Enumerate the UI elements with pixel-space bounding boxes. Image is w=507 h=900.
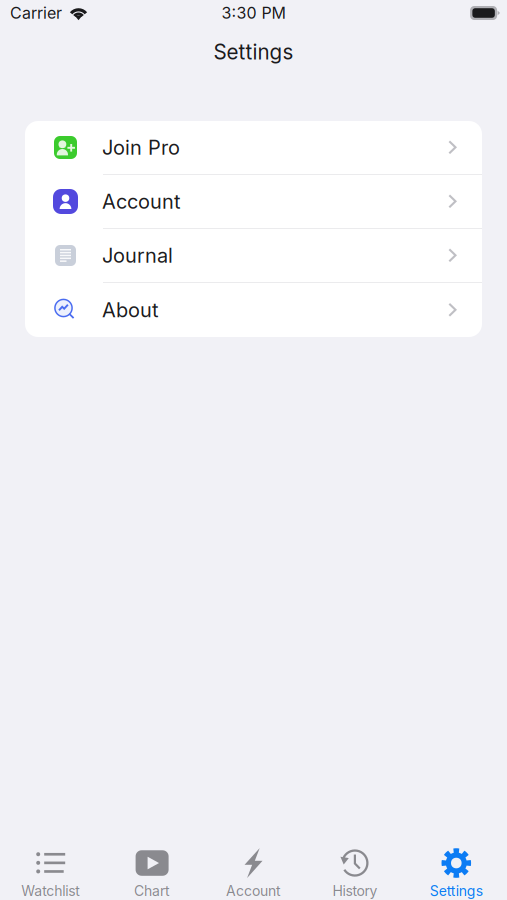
button[interactable]: Journal xyxy=(25,229,482,283)
staticText: Chart xyxy=(134,882,170,899)
staticText: Carrier xyxy=(10,3,62,23)
staticText: Journal xyxy=(102,243,173,268)
button[interactable]: About xyxy=(25,283,482,337)
staticText: Settings xyxy=(430,882,483,899)
staticText: About xyxy=(102,298,159,322)
button[interactable]: Chart xyxy=(101,836,203,900)
button[interactable]: Account xyxy=(25,175,482,229)
staticText: Settings xyxy=(213,39,293,64)
staticText: Account xyxy=(102,189,181,214)
staticText: Account xyxy=(226,882,281,899)
staticText: History xyxy=(332,882,377,899)
button[interactable]: History xyxy=(304,836,406,900)
button[interactable]: Watchlist xyxy=(0,836,101,900)
staticText: Watchlist xyxy=(21,882,80,899)
button[interactable]: Account xyxy=(203,836,304,900)
staticText: 3:30 PM xyxy=(221,3,285,23)
button[interactable]: Join Pro xyxy=(25,121,482,175)
button[interactable]: Settings xyxy=(406,836,507,900)
staticText: Join Pro xyxy=(102,135,180,160)
